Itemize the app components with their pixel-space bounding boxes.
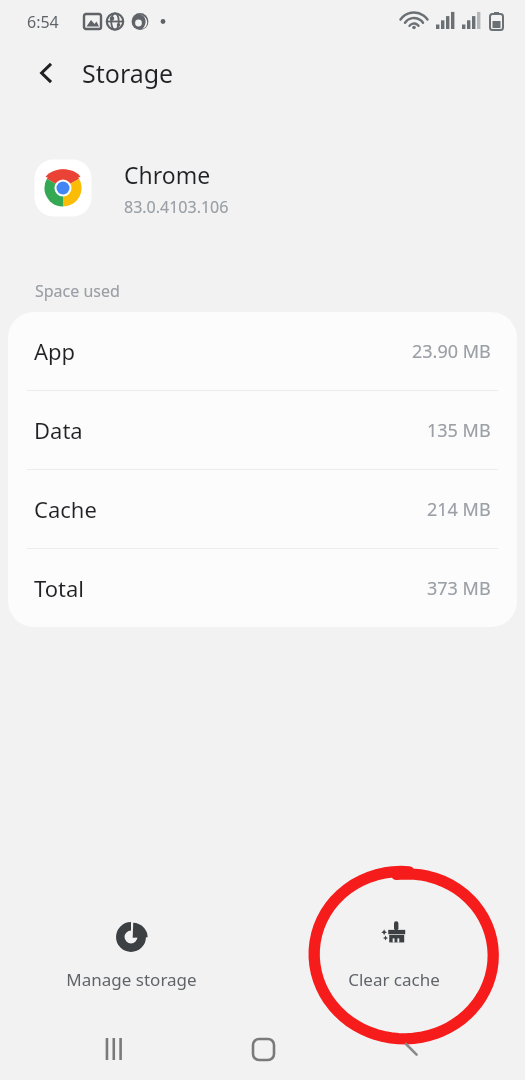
staticText: Storage	[82, 56, 174, 90]
button[interactable]: Total	[8, 549, 517, 627]
staticText: Data	[34, 415, 83, 445]
staticText: Manage storage	[66, 968, 197, 991]
button[interactable]: Recents	[90, 1025, 138, 1073]
staticText: Chrome	[124, 159, 211, 190]
staticText: Total	[34, 573, 84, 603]
button[interactable]: App	[8, 312, 517, 390]
button[interactable]: Chrome	[0, 150, 525, 226]
button[interactable]: Back	[24, 51, 68, 95]
staticText: 135 MB	[427, 418, 491, 443]
button[interactable]: Back	[387, 1025, 435, 1073]
staticText: 373 MB	[427, 576, 491, 601]
staticText: 214 MB	[427, 497, 491, 522]
button[interactable]: Home	[239, 1025, 287, 1073]
button[interactable]: Clear cache	[262, 900, 525, 1010]
staticText: Clear cache	[348, 968, 440, 991]
staticText: 6:54	[27, 11, 59, 33]
button[interactable]: Manage storage	[0, 900, 262, 1010]
staticText: 23.90 MB	[412, 339, 491, 364]
staticText: Cache	[34, 494, 97, 524]
button[interactable]: Cache	[8, 470, 517, 548]
staticText: App	[34, 336, 76, 366]
staticText: 83.0.4103.106	[124, 196, 229, 218]
staticText: Space used	[35, 280, 120, 302]
button[interactable]: Data	[8, 391, 517, 469]
